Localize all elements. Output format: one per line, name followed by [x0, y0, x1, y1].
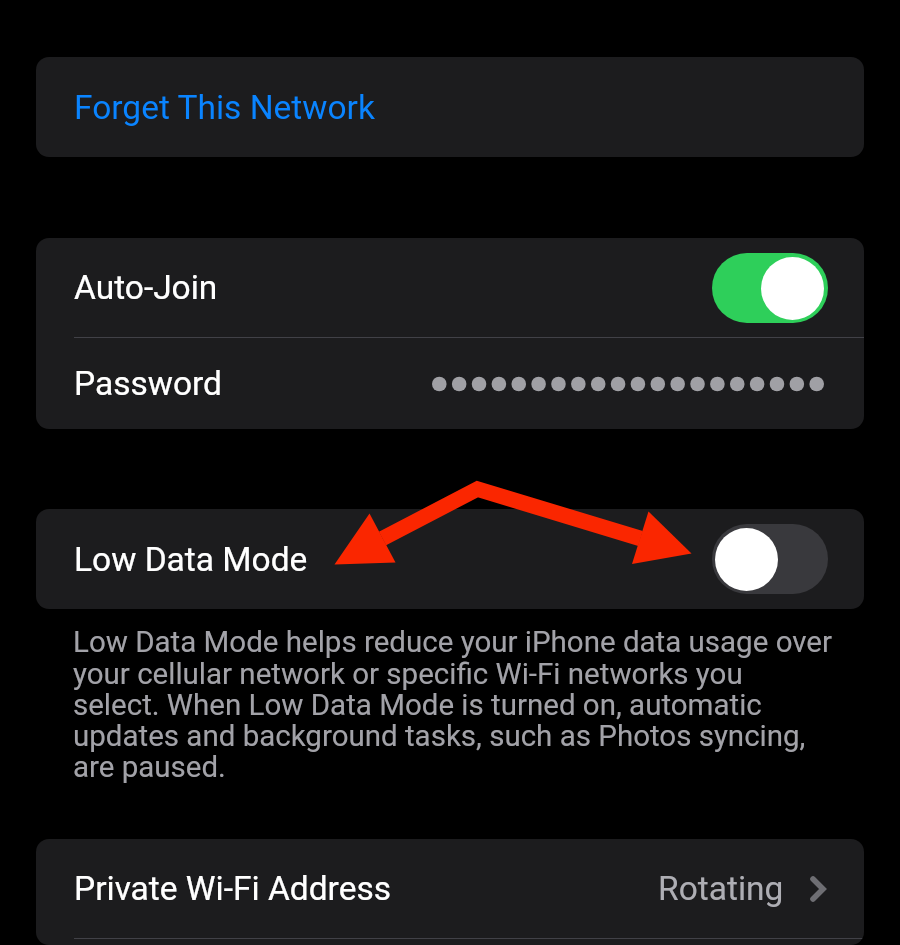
staticText: Private Wi-Fi Address	[74, 869, 391, 908]
staticText: Low Data Mode	[74, 540, 308, 579]
button[interactable]: Private Wi-Fi Address	[36, 839, 864, 938]
button[interactable]: Password	[36, 338, 864, 429]
button[interactable]: Low Data Mode off	[712, 524, 828, 594]
staticText: Rotating	[658, 869, 784, 908]
button[interactable]: Forget This Network	[36, 57, 864, 157]
button[interactable]: Auto-Join on	[712, 253, 828, 323]
button[interactable]: Auto-Join	[36, 238, 864, 337]
staticText: Password	[74, 364, 222, 403]
staticText: Low Data Mode helps reduce your iPhone d…	[73, 625, 834, 784]
button[interactable]: Low Data Mode	[36, 509, 864, 609]
staticText: Forget This Network	[74, 88, 375, 127]
staticText: Auto-Join	[74, 268, 218, 307]
